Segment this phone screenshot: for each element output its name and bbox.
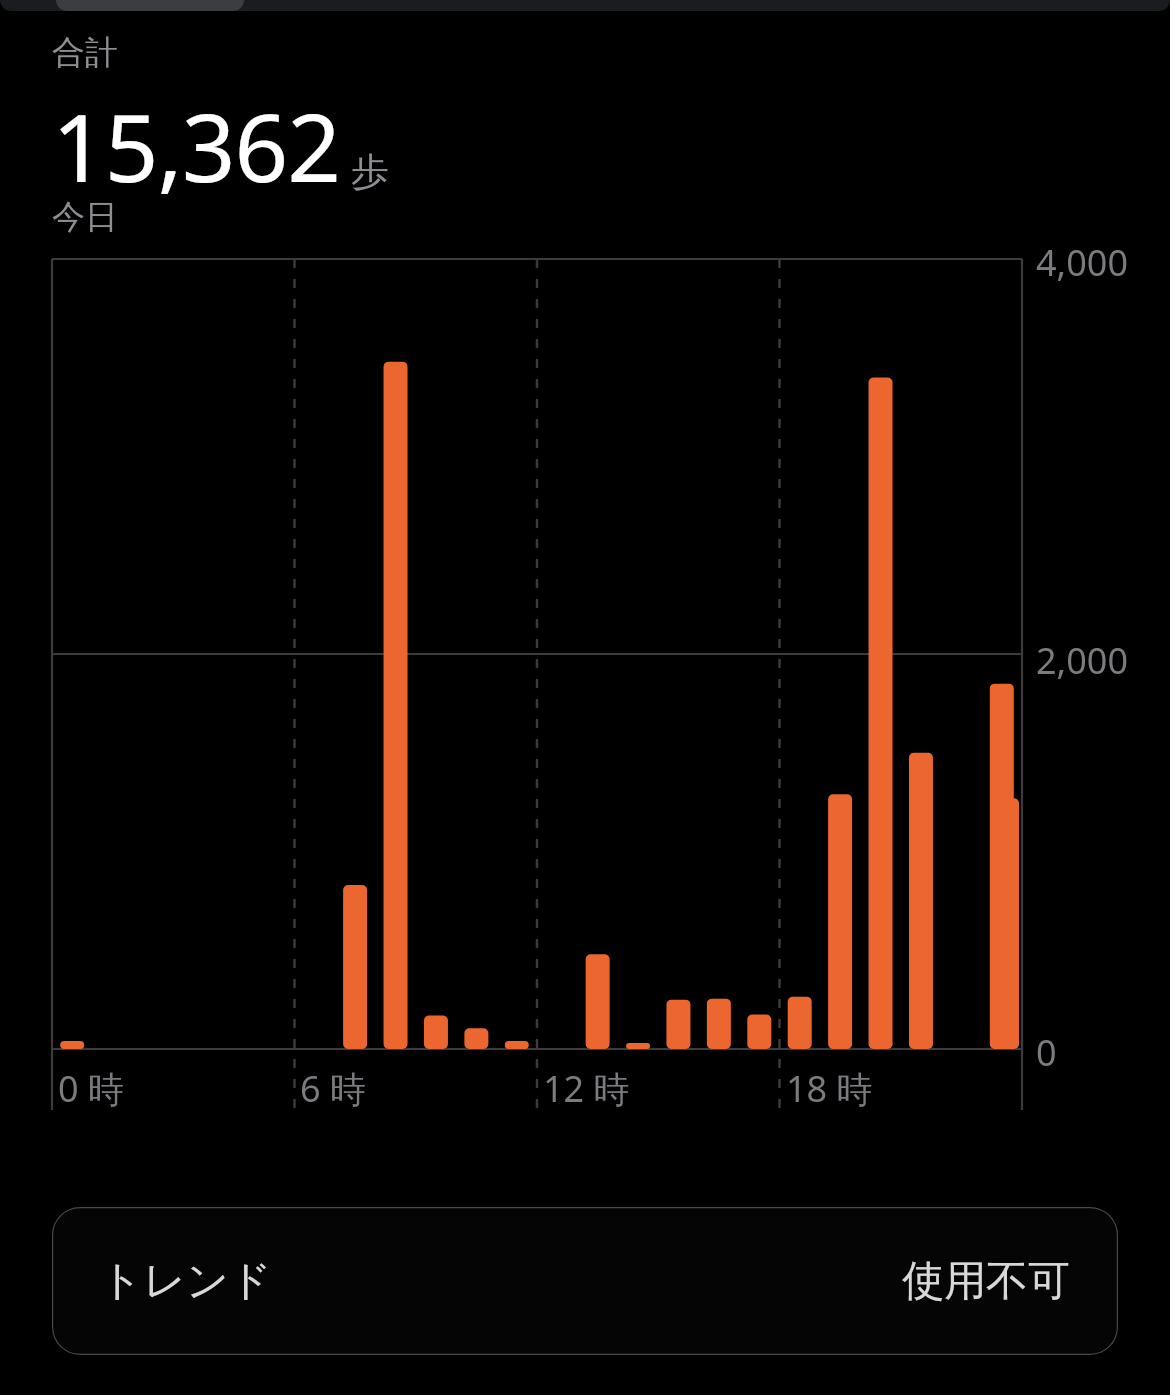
staticText: 4,000 (1036, 238, 1129, 287)
staticText: 合計 (52, 32, 118, 74)
staticText: 今日 (52, 196, 118, 238)
staticText: 18 時 (786, 1064, 873, 1113)
button[interactable]: トレンド (52, 1207, 1118, 1355)
staticText: 15,362 (52, 82, 341, 210)
staticText: 0 時 (58, 1064, 124, 1113)
staticText: 使用不可 (902, 1255, 1070, 1308)
staticText: 歩 (341, 144, 389, 196)
button[interactable]: Tab (56, 0, 244, 11)
staticText: 12 時 (543, 1064, 630, 1113)
staticText: 0 (1036, 1028, 1057, 1077)
staticText: 2,000 (1036, 636, 1129, 685)
staticText: 6 時 (300, 1064, 366, 1113)
staticText: トレンド (100, 1255, 272, 1308)
